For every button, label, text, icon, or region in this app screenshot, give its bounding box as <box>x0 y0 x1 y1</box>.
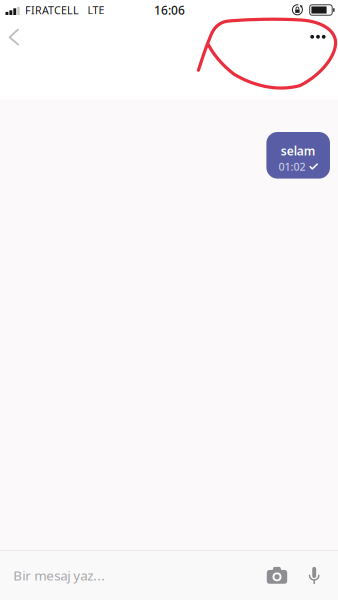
staticText: Bir mesaj yaz... <box>13 566 105 584</box>
staticText: LTE <box>87 3 104 17</box>
staticText: 01:02 <box>278 159 305 174</box>
staticText: 16:06 <box>154 2 185 18</box>
staticText: FIRATCELL <box>25 3 79 17</box>
button[interactable]: Camera <box>258 559 296 592</box>
button[interactable]: Back <box>0 20 33 62</box>
button[interactable]: More options <box>296 20 338 55</box>
button[interactable]: Record voice message <box>300 559 329 592</box>
staticText: selam <box>281 143 316 159</box>
